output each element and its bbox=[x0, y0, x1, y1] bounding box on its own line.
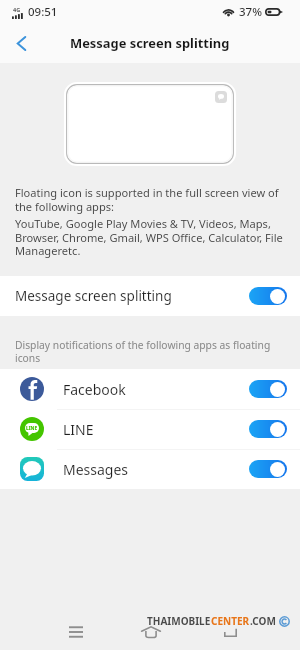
staticText: Message screen splitting bbox=[70, 34, 230, 52]
staticText: Messages bbox=[63, 460, 129, 479]
button[interactable]: Toggle bbox=[249, 380, 287, 398]
button[interactable]: Back bbox=[216, 619, 244, 647]
button[interactable]: Home bbox=[137, 619, 165, 647]
staticText: Facebook bbox=[63, 380, 126, 399]
staticText: LINE bbox=[63, 420, 94, 439]
staticText: 09:51 bbox=[28, 4, 58, 20]
button[interactable]: Back bbox=[6, 28, 36, 58]
staticText: .COM bbox=[250, 614, 276, 628]
button[interactable]: Toggle bbox=[249, 287, 287, 305]
staticText: CENTER bbox=[211, 614, 250, 628]
staticText: 37% bbox=[239, 4, 262, 20]
staticText: YouTube, Google Play Movies & TV, Videos… bbox=[15, 216, 283, 258]
button[interactable]: Toggle bbox=[249, 460, 287, 478]
button[interactable]: Recent apps bbox=[62, 619, 90, 647]
staticText: Message screen splitting bbox=[15, 287, 172, 305]
staticText: Floating icon is supported in the full s… bbox=[15, 185, 279, 214]
button[interactable]: Message screen splitting bbox=[0, 276, 300, 316]
button[interactable]: Toggle bbox=[249, 420, 287, 438]
staticText: LINE bbox=[26, 425, 38, 432]
staticText: Display notifications of the following a… bbox=[15, 338, 271, 365]
button[interactable]: Facebook bbox=[0, 369, 300, 409]
staticText: 4G bbox=[13, 6, 21, 13]
staticText: THAIMOBILE bbox=[147, 614, 211, 628]
button[interactable]: Messages bbox=[0, 449, 300, 489]
button[interactable]: LINE bbox=[0, 409, 300, 449]
